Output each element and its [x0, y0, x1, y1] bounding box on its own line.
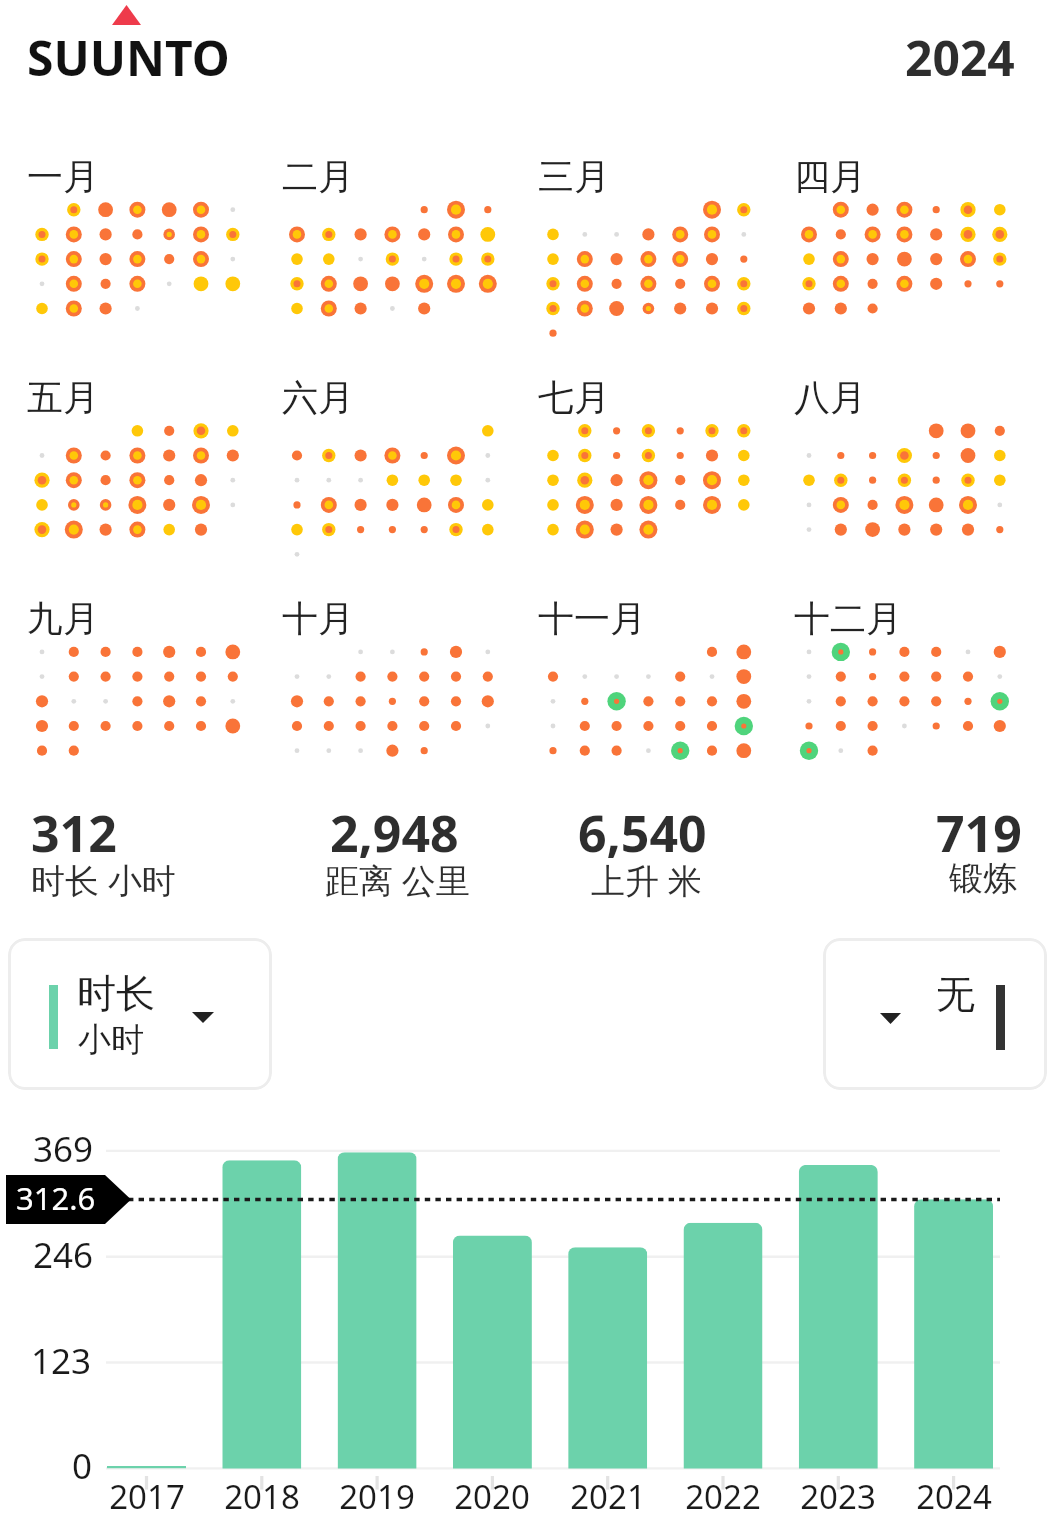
- button[interactable]: 时长: [8, 938, 272, 1090]
- staticText: 一月: [27, 154, 99, 199]
- staticText: 0: [72, 1442, 93, 1490]
- staticText: 2023: [778, 1474, 898, 1519]
- staticText: 距离 公里: [325, 857, 470, 903]
- staticText: 2022: [663, 1474, 783, 1519]
- staticText: 123: [31, 1337, 92, 1385]
- staticText: 十一月: [538, 596, 646, 641]
- staticText: 2024: [905, 25, 1015, 90]
- button[interactable]: 2021: [548, 1474, 668, 1519]
- staticText: 小时: [78, 1019, 144, 1061]
- staticText: 四月: [794, 154, 866, 199]
- staticText: 锻炼: [949, 857, 1017, 900]
- staticText: 十月: [282, 596, 354, 641]
- staticText: 时长: [77, 969, 155, 1018]
- staticText: 二月: [282, 154, 354, 199]
- staticText: 六月: [282, 375, 354, 420]
- staticText: 2,948: [330, 799, 459, 867]
- staticText: 2020: [432, 1474, 552, 1519]
- button[interactable]: 2017: [87, 1474, 207, 1519]
- staticText: 6,540: [578, 799, 707, 867]
- button[interactable]: 2020: [432, 1474, 552, 1519]
- staticText: 246: [33, 1231, 94, 1279]
- staticText: 369: [33, 1125, 94, 1173]
- staticText: 七月: [538, 375, 610, 420]
- staticText: 三月: [538, 154, 610, 199]
- staticText: 312.6: [16, 1177, 96, 1219]
- staticText: 312: [31, 799, 117, 867]
- staticText: 2017: [87, 1474, 207, 1519]
- staticText: 五月: [27, 375, 99, 420]
- staticText: 无: [936, 970, 975, 1019]
- button[interactable]: 2024: [894, 1474, 1014, 1519]
- staticText: 十二月: [794, 596, 902, 641]
- button[interactable]: Suunto: [0, 0, 300, 100]
- staticText: 上升 米: [591, 857, 702, 903]
- staticText: 2021: [548, 1474, 668, 1519]
- staticText: 2018: [202, 1474, 322, 1519]
- staticText: 719: [936, 799, 1022, 867]
- staticText: 时长 小时: [31, 857, 176, 903]
- staticText: 九月: [27, 596, 99, 641]
- staticText: 2019: [317, 1474, 437, 1519]
- button[interactable]: 2018: [202, 1474, 322, 1519]
- staticText: 2024: [894, 1474, 1014, 1519]
- button[interactable]: 2023: [778, 1474, 898, 1519]
- button[interactable]: 2019: [317, 1474, 437, 1519]
- button[interactable]: 2022: [663, 1474, 783, 1519]
- button[interactable]: 无: [823, 938, 1047, 1090]
- staticText: 八月: [794, 375, 866, 420]
- staticText: SUUNTO: [27, 25, 230, 90]
